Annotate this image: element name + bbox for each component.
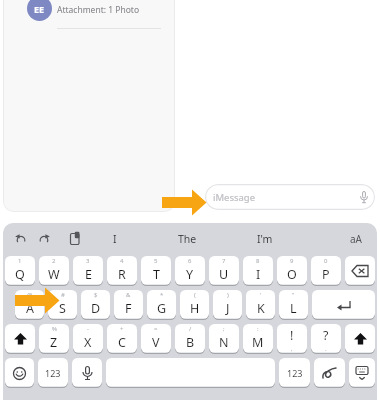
button[interactable]: , (277, 324, 307, 354)
button[interactable] (314, 358, 345, 388)
staticText: aA (350, 232, 362, 246)
button[interactable]: 123 (279, 358, 310, 388)
staticText: 123 (45, 367, 61, 379)
button[interactable]: The (157, 223, 217, 255)
button[interactable]: aA (336, 223, 376, 255)
staticText: % (52, 325, 57, 333)
button[interactable] (349, 358, 375, 388)
button[interactable] (5, 358, 34, 388)
staticText: G (157, 300, 167, 317)
button[interactable]: 123 (38, 358, 68, 388)
button[interactable]: 0 (311, 256, 341, 286)
staticText: Y (186, 266, 194, 283)
staticText: U (219, 266, 229, 283)
staticText: S (59, 300, 66, 317)
button[interactable]: 8 (243, 256, 273, 286)
button[interactable]: 5 (141, 256, 171, 286)
staticText: iMessage (213, 191, 256, 204)
button[interactable]: + (107, 324, 137, 354)
button[interactable]: / (175, 324, 205, 354)
staticText: P (322, 266, 330, 283)
button[interactable]: @ (15, 290, 44, 320)
staticText: J (226, 300, 230, 317)
staticText: A (26, 300, 34, 317)
staticText: V (152, 334, 160, 351)
button[interactable] (5, 324, 35, 354)
staticText: - (87, 325, 89, 333)
button[interactable]: 6 (175, 256, 205, 286)
button[interactable]: EE (27, 0, 52, 21)
staticText: L (290, 300, 297, 317)
button[interactable]: $ (81, 290, 110, 320)
button[interactable]: - (73, 324, 103, 354)
button[interactable]: * (147, 290, 176, 320)
staticText: ; (223, 325, 225, 333)
button[interactable]: ' (246, 290, 275, 320)
staticText: 2 (52, 257, 56, 265)
staticText: H (190, 300, 200, 317)
button[interactable]: % (39, 324, 69, 354)
button[interactable] (312, 290, 375, 320)
staticText: * (160, 291, 164, 299)
button[interactable] (72, 358, 102, 388)
staticText: 9 (290, 257, 294, 265)
staticText: 1 (18, 257, 22, 265)
button[interactable] (106, 358, 275, 388)
staticText: . (325, 345, 327, 353)
staticText: K (257, 300, 265, 317)
staticText: # (61, 291, 65, 299)
staticText: ( (194, 291, 196, 299)
button[interactable]: 7 (209, 256, 239, 286)
staticText: / (189, 325, 192, 333)
staticText: D (91, 300, 101, 317)
button[interactable]: ) (213, 290, 242, 320)
staticText: + (120, 325, 124, 333)
staticText: $ (94, 291, 98, 299)
button[interactable]: ( (180, 290, 209, 320)
button[interactable]: iMessage (205, 184, 375, 210)
button[interactable] (345, 324, 375, 354)
button[interactable]: 3 (73, 256, 103, 286)
staticText: I (113, 232, 117, 246)
staticText: B (186, 334, 195, 351)
staticText: , (291, 345, 293, 353)
staticText: 8 (256, 257, 260, 265)
staticText: 6 (188, 257, 192, 265)
staticText: N (219, 334, 229, 351)
button[interactable]: : (243, 324, 273, 354)
button[interactable]: = (141, 324, 171, 354)
staticText: " (292, 291, 295, 299)
button[interactable]: I'm (235, 223, 295, 255)
button[interactable]: 1 (5, 256, 35, 286)
staticText: = (154, 325, 158, 333)
staticText: O (287, 266, 297, 283)
button[interactable]: 2 (39, 256, 69, 286)
button[interactable]: & (114, 290, 143, 320)
staticText: Q (15, 266, 25, 283)
staticText: 5 (154, 257, 158, 265)
button[interactable]: ; (209, 324, 239, 354)
staticText: W (48, 266, 60, 283)
staticText: I'm (257, 232, 273, 246)
button[interactable]: I (85, 223, 145, 255)
staticText: 4 (120, 257, 124, 265)
staticText: ' (260, 291, 262, 299)
staticText: ! (290, 327, 294, 344)
staticText: & (126, 291, 131, 299)
button[interactable] (345, 256, 375, 286)
staticText: F (125, 300, 132, 317)
button[interactable]: 4 (107, 256, 137, 286)
staticText: 0 (324, 257, 328, 265)
staticText: 7 (222, 257, 226, 265)
button[interactable] (11, 231, 83, 248)
staticText: C (118, 334, 126, 351)
button[interactable]: . (311, 324, 341, 354)
button[interactable]: 9 (277, 256, 307, 286)
button[interactable]: # (48, 290, 77, 320)
staticText: R (118, 266, 126, 283)
staticText: M (252, 334, 264, 351)
staticText: E (85, 266, 92, 283)
button[interactable]: " (279, 290, 308, 320)
staticText: Attachment: 1 Photo (57, 4, 140, 16)
staticText: X (84, 334, 92, 351)
